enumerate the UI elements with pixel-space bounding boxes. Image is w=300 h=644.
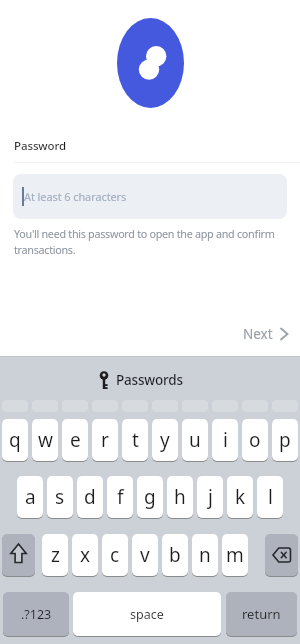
button[interactable] <box>265 534 298 576</box>
staticText: space <box>130 606 164 623</box>
button[interactable]: w <box>32 419 58 461</box>
button[interactable]: r <box>92 419 118 461</box>
staticText: Passwords <box>116 371 183 389</box>
button[interactable]: j <box>197 476 223 518</box>
button[interactable]: m <box>222 534 248 576</box>
staticText: y <box>160 427 170 453</box>
staticText: Password <box>14 138 67 154</box>
button[interactable]: a <box>17 476 43 518</box>
staticText: v <box>140 542 150 568</box>
staticText: d <box>84 484 96 510</box>
staticText: t <box>132 427 139 453</box>
button[interactable]: t <box>122 419 148 461</box>
staticText: n <box>199 542 211 568</box>
staticText: .?123 <box>21 606 52 623</box>
button[interactable]: v <box>132 534 158 576</box>
button[interactable]: return <box>226 592 297 636</box>
button[interactable]: o <box>242 419 268 461</box>
button[interactable]: g <box>137 476 163 518</box>
staticText: h <box>174 484 186 510</box>
staticText: You'll need this password to open the ap… <box>14 226 275 257</box>
staticText: o <box>249 427 261 453</box>
button[interactable]: y <box>152 419 178 461</box>
staticText: e <box>70 427 81 453</box>
staticText: s <box>55 484 65 510</box>
staticText: x <box>80 542 91 568</box>
staticText: a <box>25 484 36 510</box>
button[interactable]: h <box>167 476 193 518</box>
button[interactable]: n <box>192 534 218 576</box>
button[interactable]: l <box>257 476 283 518</box>
button[interactable]: z <box>42 534 68 576</box>
staticText: k <box>235 484 246 510</box>
button[interactable]: u <box>182 419 208 461</box>
button[interactable]: i <box>212 419 238 461</box>
button[interactable]: space <box>73 592 221 636</box>
button[interactable]: b <box>162 534 188 576</box>
staticText: l <box>268 484 273 510</box>
staticText: r <box>101 427 109 453</box>
button[interactable]: .?123 <box>3 592 69 636</box>
button[interactable]: k <box>227 476 253 518</box>
staticText: return <box>242 605 281 623</box>
button[interactable] <box>2 534 35 576</box>
button[interactable]: Passwords <box>98 369 183 391</box>
staticText: i <box>223 427 228 453</box>
staticText: p <box>279 427 291 453</box>
button[interactable]: e <box>62 419 88 461</box>
staticText: c <box>110 542 120 568</box>
button[interactable]: Next <box>243 325 289 343</box>
staticText: j <box>208 484 213 510</box>
staticText: q <box>9 427 21 453</box>
button[interactable]: At least 6 characters <box>13 174 287 219</box>
button[interactable]: d <box>77 476 103 518</box>
button[interactable]: p <box>272 419 298 461</box>
staticText: u <box>189 427 201 453</box>
staticText: g <box>144 484 156 510</box>
button[interactable]: x <box>72 534 98 576</box>
staticText: Next <box>243 325 273 343</box>
staticText: f <box>117 484 124 510</box>
staticText: b <box>169 542 181 568</box>
button[interactable]: f <box>107 476 133 518</box>
staticText: At least 6 characters <box>24 189 127 204</box>
button[interactable]: c <box>102 534 128 576</box>
button[interactable]: q <box>2 419 28 461</box>
staticText: w <box>38 427 53 453</box>
button[interactable]: s <box>47 476 73 518</box>
staticText: m <box>226 542 244 568</box>
staticText: z <box>51 542 60 568</box>
